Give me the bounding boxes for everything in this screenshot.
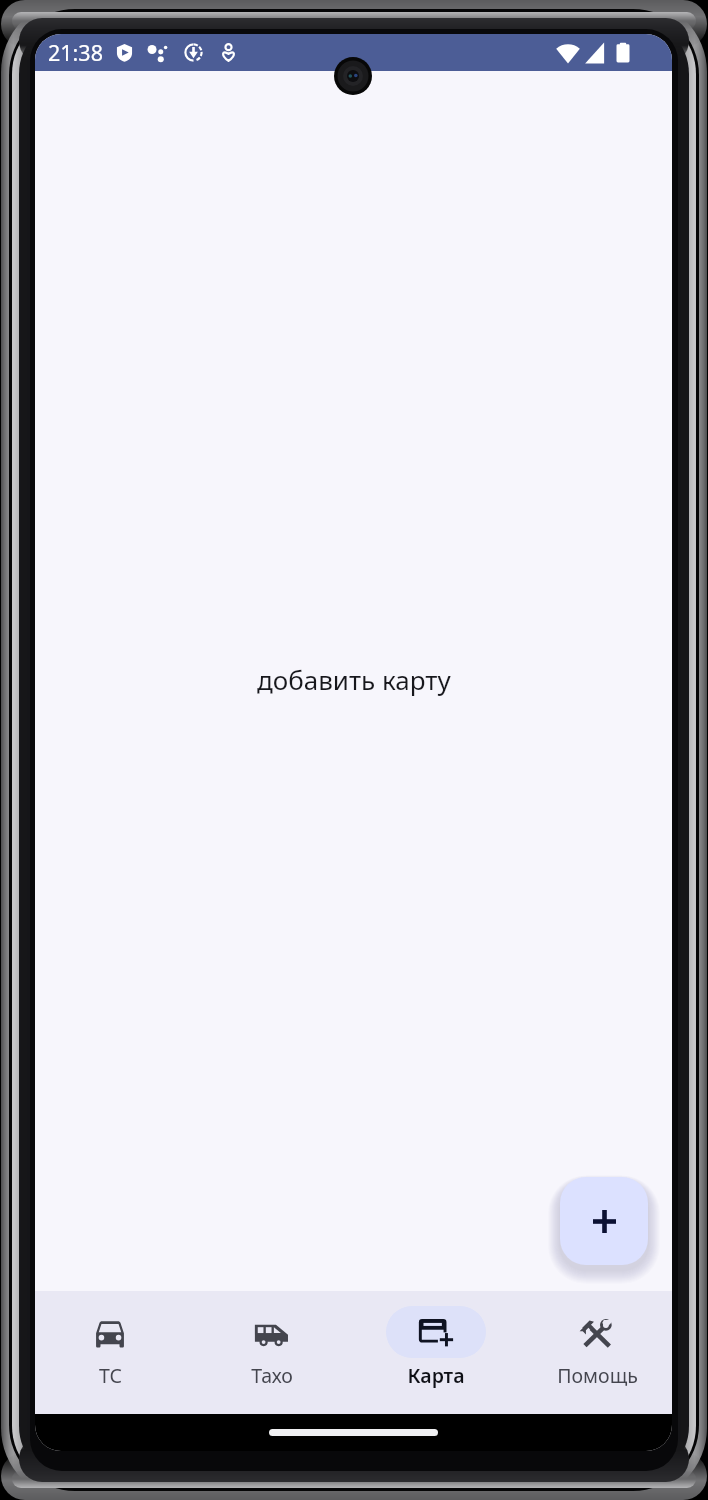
button[interactable]: Помощь	[522, 1291, 672, 1414]
staticText: 21:38	[48, 38, 103, 67]
button[interactable]: ТС	[35, 1291, 185, 1414]
staticText: Помощь	[557, 1362, 638, 1389]
button[interactable]: Добавить карту	[560, 1177, 648, 1265]
button[interactable]: Тахо	[197, 1291, 347, 1414]
staticText: Тахо	[251, 1362, 293, 1389]
staticText: ТС	[99, 1362, 122, 1389]
staticText: добавить карту	[257, 662, 451, 697]
button[interactable]: Карта	[361, 1291, 511, 1414]
staticText: Карта	[407, 1362, 465, 1389]
